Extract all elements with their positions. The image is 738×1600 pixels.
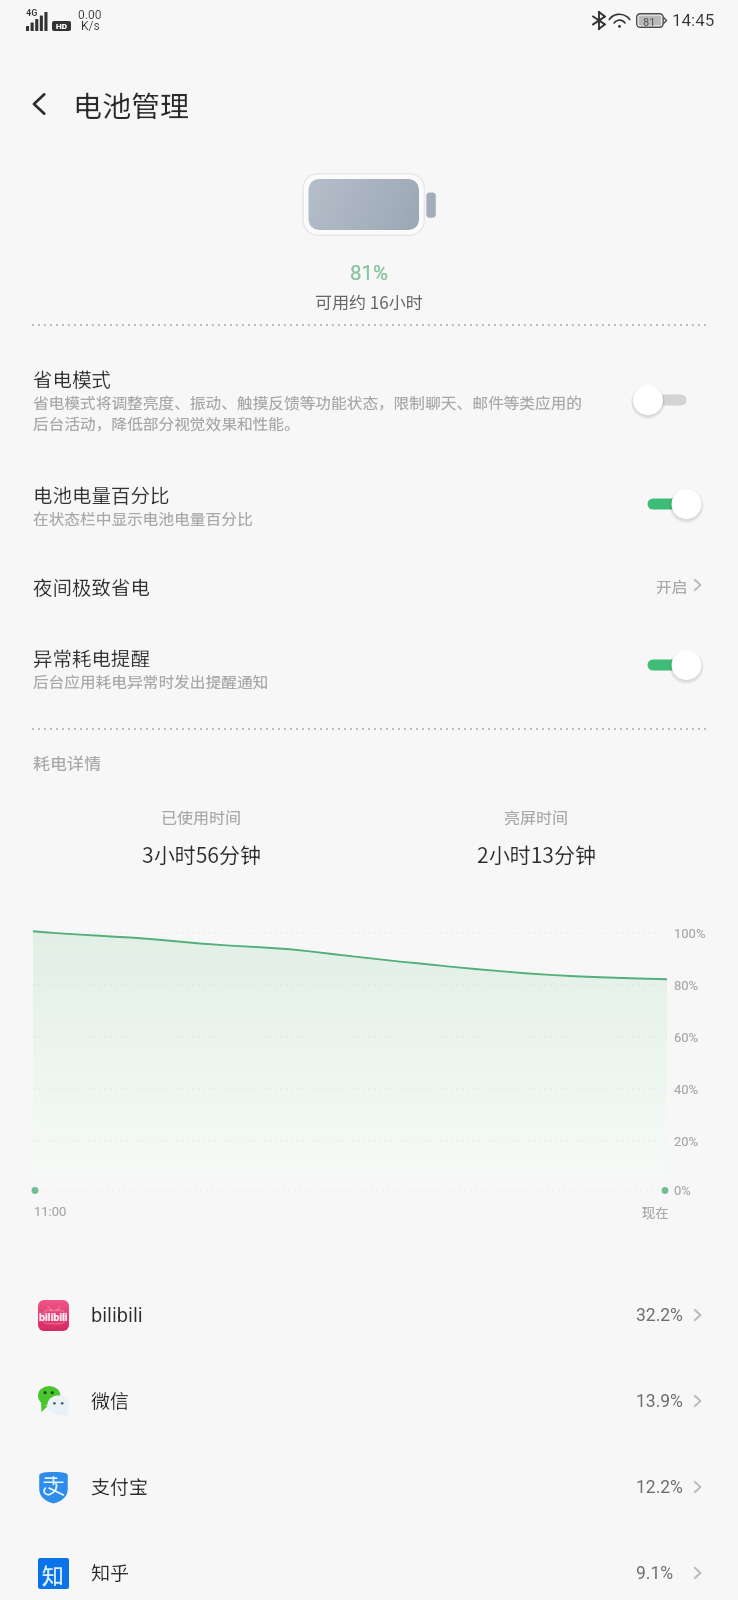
button[interactable]: Switch off (633, 380, 702, 420)
staticText: 100% (674, 926, 706, 941)
staticText: 81% (350, 261, 389, 285)
staticText: 0% (674, 1183, 691, 1198)
staticText: 开启 (656, 575, 688, 598)
staticText: 夜间极致省电 (33, 572, 151, 600)
staticText: 13.9% (636, 1391, 683, 1412)
staticText: HD (56, 22, 67, 31)
staticText: 耗电详情 (33, 750, 101, 775)
staticText: 电池电量百分比 (33, 480, 170, 508)
staticText: K/s (81, 19, 100, 33)
button[interactable]: Switch on (633, 484, 702, 524)
staticText: 11:00 (34, 1204, 67, 1219)
staticText: 12.2% (636, 1477, 683, 1498)
staticText: 知乎 (91, 1558, 130, 1586)
staticText: bilibili (39, 1311, 68, 1323)
staticText: 9.1% (636, 1563, 674, 1584)
button[interactable]: bilibili (0, 1273, 738, 1359)
staticText: 支付宝 (91, 1472, 149, 1500)
staticText: 2小时13分钟 (477, 839, 596, 869)
staticText: 3小时56分钟 (142, 839, 261, 869)
staticText: 异常耗电提醒 (33, 643, 151, 671)
staticText: 40% (674, 1082, 699, 1097)
staticText: 省电模式 (33, 364, 112, 392)
staticText: 后台活动，降低部分视觉效果和性能。 (33, 412, 300, 435)
staticText: 省电模式将调整亮度、振动、触摸反馈等功能状态，限制聊天、邮件等类应用的 (33, 391, 583, 414)
staticText: 81 (643, 16, 656, 29)
staticText: 60% (674, 1030, 699, 1045)
staticText: 现在 (642, 1203, 669, 1222)
button[interactable]: 省电模式 (0, 352, 738, 448)
staticText: 亮屏时间 (504, 805, 569, 828)
button[interactable]: 夜间极致省电 (0, 560, 738, 612)
staticText: 可用约 16小时 (315, 289, 423, 314)
staticText: 20% (674, 1134, 699, 1149)
staticText: 后台应用耗电异常时发出提醒通知 (33, 670, 269, 693)
staticText: 知 (42, 1558, 65, 1589)
staticText: 32.2% (636, 1305, 683, 1326)
staticText: 已使用时间 (161, 805, 242, 828)
staticText: 80% (674, 978, 699, 993)
button[interactable]: Switch on (633, 645, 702, 685)
button[interactable]: 异常耗电提醒 (0, 631, 738, 706)
staticText: 电池管理 (73, 83, 190, 125)
button[interactable]: 知 (0, 1531, 738, 1600)
staticText: 在状态栏中显示电池电量百分比 (33, 507, 253, 530)
button[interactable]: Back (9, 74, 69, 134)
button[interactable]: 支付宝 (0, 1445, 738, 1531)
button[interactable]: 电池电量百分比 (0, 468, 738, 543)
staticText: 微信 (91, 1386, 130, 1414)
staticText: 0.00 (78, 8, 102, 22)
button[interactable]: 微信 (0, 1359, 738, 1445)
staticText: 14:45 (672, 10, 715, 30)
staticText: 4G (26, 8, 38, 19)
staticText: bilibili (91, 1303, 143, 1326)
